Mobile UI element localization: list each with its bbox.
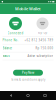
button[interactable]: Top Up (29, 17, 55, 34)
staticText: Pay Now (22, 71, 34, 74)
staticText: +62 812 3456 789 (24, 38, 53, 42)
button[interactable]: Back (6, 91, 15, 100)
staticText: Balance (3, 46, 13, 50)
button[interactable]: Balance (0, 44, 56, 52)
staticText: Rp 150.000 (35, 46, 53, 50)
staticText: Mobile Wallet (15, 6, 41, 11)
staticText: Terms & conditions apply (11, 78, 45, 81)
button[interactable]: Status (0, 52, 56, 60)
button[interactable]: Phone No. (0, 36, 56, 44)
staticText: Active subscription (27, 54, 53, 58)
button[interactable]: Connected (1, 17, 29, 35)
button[interactable]: Home (23, 91, 32, 100)
staticText: Connected (7, 31, 23, 35)
button[interactable]: Recent apps (40, 91, 49, 100)
staticText: Phone No. (3, 38, 19, 42)
staticText: Top Up (37, 31, 47, 34)
button[interactable]: Pay Now (13, 70, 43, 76)
staticText: Status (3, 54, 10, 58)
